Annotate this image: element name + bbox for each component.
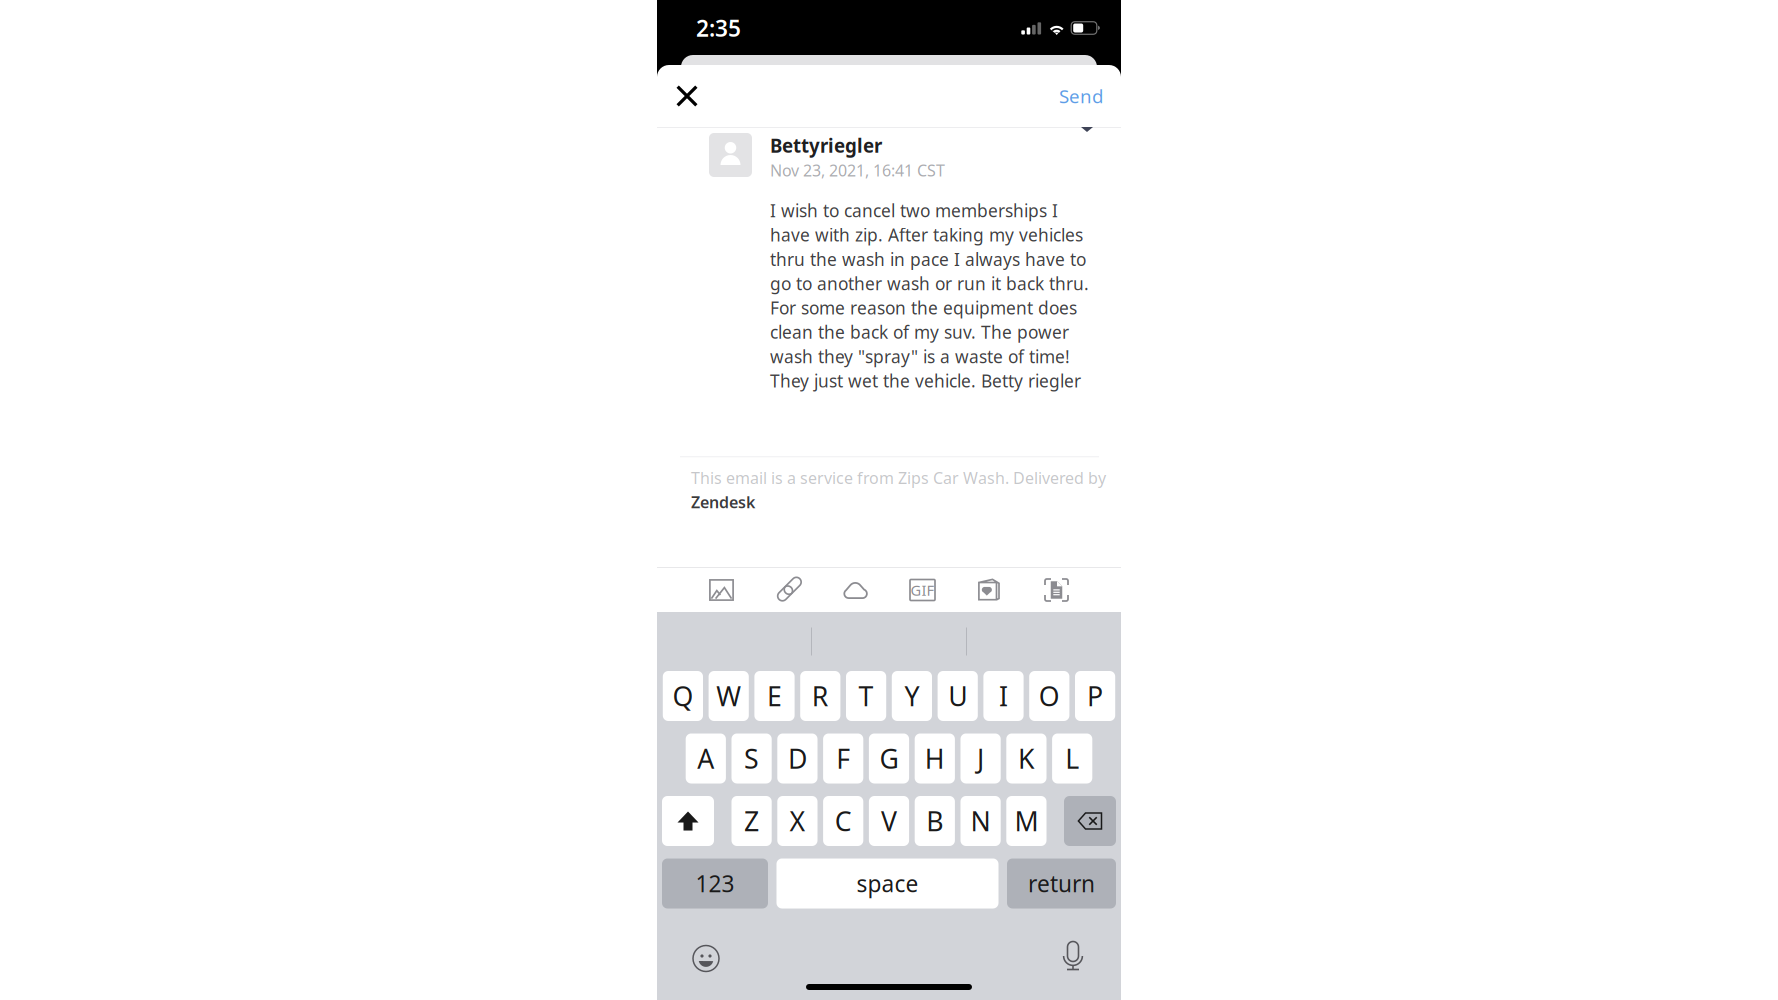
button[interactable]: D — [777, 733, 817, 783]
staticText: U — [948, 678, 967, 714]
button[interactable]: T — [846, 671, 886, 721]
button[interactable]: Emoji keyboard — [685, 937, 727, 979]
button[interactable]: V — [869, 796, 909, 846]
button[interactable]: S — [731, 733, 772, 783]
staticText: Bettyriegler — [770, 133, 882, 158]
staticText: Send — [1059, 84, 1103, 108]
button[interactable]: Shift — [662, 796, 714, 846]
button[interactable]: R — [800, 671, 840, 721]
button[interactable]: Insert card — [956, 568, 1023, 612]
button[interactable]: Insert GIF — [889, 568, 956, 612]
staticText: G — [879, 741, 898, 776]
staticText: I wish to cancel two memberships I have … — [770, 199, 1089, 392]
staticText: P — [1087, 678, 1103, 714]
button[interactable]: 123 — [662, 858, 768, 908]
staticText: J — [977, 741, 984, 776]
button[interactable]: J — [960, 733, 1001, 783]
staticText: Y — [904, 678, 919, 714]
staticText: E — [767, 678, 782, 714]
button[interactable]: Y — [892, 671, 932, 721]
staticText: T — [859, 678, 874, 714]
staticText: D — [788, 741, 807, 776]
staticText: H — [925, 741, 945, 776]
staticText: K — [1018, 741, 1035, 776]
staticText: Zendesk — [691, 491, 755, 513]
staticText: GIF — [910, 580, 934, 600]
staticText: Nov 23, 2021, 16:41 CST — [770, 160, 945, 181]
button[interactable]: Z — [731, 796, 772, 846]
button[interactable]: Insert photo — [688, 568, 755, 612]
button[interactable]: Scan document — [1023, 568, 1090, 612]
staticText: return — [1028, 868, 1095, 898]
button[interactable]: P — [1075, 671, 1115, 721]
staticText: A — [697, 741, 714, 776]
button[interactable]: N — [960, 796, 1001, 846]
button[interactable]: L — [1052, 733, 1092, 783]
staticText: W — [716, 678, 741, 714]
button[interactable]: U — [938, 671, 978, 721]
staticText: O — [1039, 678, 1060, 714]
button[interactable]: Delete — [1064, 796, 1116, 846]
staticText: B — [926, 803, 943, 839]
button[interactable]: space — [776, 858, 998, 908]
button[interactable]: Close — [657, 65, 717, 127]
staticText: 2:35 — [696, 13, 741, 43]
staticText: F — [836, 741, 850, 776]
staticText: This email is a service from Zips Car Wa… — [691, 467, 1106, 488]
staticText: Q — [672, 678, 693, 714]
button[interactable]: F — [823, 733, 863, 783]
button[interactable]: Dictate — [1062, 941, 1084, 975]
button[interactable]: E — [754, 671, 795, 721]
button[interactable]: M — [1006, 796, 1046, 846]
staticText: C — [835, 803, 852, 839]
staticText: Z — [744, 803, 759, 839]
button[interactable]: I — [983, 671, 1024, 721]
staticText: L — [1065, 741, 1079, 776]
staticText: M — [1014, 803, 1038, 839]
staticText: space — [856, 868, 918, 898]
button[interactable]: return — [1007, 858, 1116, 908]
button[interactable]: W — [709, 671, 749, 721]
button[interactable]: Attach file — [755, 568, 822, 612]
button[interactable]: X — [777, 796, 817, 846]
button[interactable]: C — [823, 796, 863, 846]
staticText: 123 — [695, 868, 734, 898]
staticText: R — [812, 678, 829, 714]
button[interactable]: K — [1006, 733, 1046, 783]
button[interactable]: G — [869, 733, 909, 783]
button[interactable]: O — [1029, 671, 1069, 721]
button[interactable]: Send — [1037, 65, 1121, 127]
button[interactable]: H — [915, 733, 955, 783]
button[interactable]: A — [686, 733, 726, 783]
button[interactable]: B — [915, 796, 955, 846]
button[interactable]: Q — [663, 671, 703, 721]
staticText: V — [881, 803, 897, 839]
staticText: S — [744, 741, 759, 776]
button[interactable]: Cloud drive — [822, 568, 889, 612]
staticText: X — [789, 803, 805, 839]
staticText: I — [999, 678, 1008, 714]
staticText: N — [971, 803, 991, 839]
